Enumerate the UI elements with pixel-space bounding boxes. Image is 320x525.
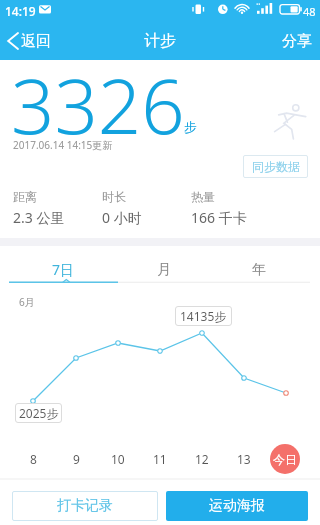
button[interactable]: 8 (19, 451, 47, 467)
button[interactable]: 今日 (270, 444, 300, 474)
staticText: 返回 (21, 32, 51, 51)
staticText: 步 (184, 119, 197, 135)
staticText: 166 千卡 (191, 208, 247, 227)
staticText: 7日 (52, 260, 75, 279)
button[interactable]: 月 (114, 246, 214, 281)
staticText: 打卡记录 (57, 497, 113, 515)
staticText: 距离 (13, 189, 37, 204)
button[interactable]: 年 (209, 246, 308, 281)
staticText: 6月 (19, 295, 35, 309)
staticText: 11 (153, 451, 167, 467)
staticText: 同步数据 (252, 159, 300, 174)
button[interactable]: 11 (146, 451, 174, 467)
staticText: 13 (237, 451, 251, 467)
staticText: 月 (157, 261, 171, 279)
staticText: 2017.06.14 14:15更新 (13, 138, 113, 152)
staticText: 2.3 公里 (13, 208, 65, 227)
staticText: 3326 (11, 53, 185, 157)
staticText: 2025步 (19, 405, 59, 421)
staticText: 48 (303, 4, 316, 19)
button[interactable]: 打卡记录 (12, 491, 158, 521)
staticText: 年 (252, 261, 266, 279)
staticText: 热量 (191, 189, 215, 204)
staticText: 10 (111, 451, 125, 467)
staticText: 12 (195, 451, 209, 467)
button[interactable]: 13 (230, 451, 258, 467)
button[interactable]: 返回 (0, 22, 61, 60)
button[interactable]: 运动海报 (166, 491, 308, 521)
staticText: 14135步 (180, 308, 227, 324)
button[interactable]: 7日 (13, 246, 114, 281)
staticText: 8 (30, 451, 37, 467)
button[interactable]: 同步数据 (243, 155, 308, 178)
staticText: 分享 (282, 32, 312, 51)
staticText: 今日 (273, 452, 297, 467)
button[interactable]: 10 (104, 451, 132, 467)
staticText: 时长 (102, 189, 126, 204)
staticText: 14:19 (5, 3, 36, 19)
button[interactable]: 分享 (270, 22, 320, 60)
button[interactable]: 12 (188, 451, 216, 467)
other: Running (272, 105, 308, 141)
staticText: 0 小时 (102, 208, 142, 227)
staticText: 运动海报 (209, 497, 265, 515)
button[interactable]: 9 (62, 451, 90, 467)
staticText: 计步 (144, 31, 176, 51)
staticText: 9 (73, 451, 80, 467)
